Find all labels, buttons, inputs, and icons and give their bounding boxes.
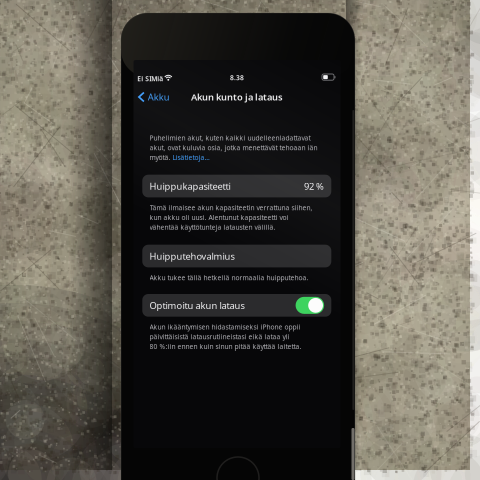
staticText: Lisätietoja…	[172, 153, 209, 162]
staticText: päivittäisistä latausrutiineistasi eikä …	[149, 332, 289, 341]
staticText: 92 %	[304, 180, 324, 192]
button[interactable]: Optimoitu akun lataus	[296, 297, 324, 314]
button[interactable]: Akku	[133, 89, 176, 105]
staticText: 8.38	[230, 73, 244, 82]
staticText: Akun ikääntymisen hidastamiseksi iPhone …	[149, 323, 300, 331]
staticText: akut, ovat kuluvia osia, jotka menettävä…	[149, 143, 317, 152]
staticText: vähentää käyttötunteja latausten välillä…	[149, 223, 275, 232]
staticText: myötä.	[149, 153, 172, 162]
staticText: Tämä ilmaisee akun kapasiteetin verrattu…	[149, 203, 312, 212]
staticText: Akku tukee tällä hetkellä normaalia huip…	[149, 273, 308, 282]
button[interactable]: Huipputehovalmius	[142, 245, 331, 267]
staticText: Huipputehovalmius	[149, 250, 234, 262]
staticText: Ei SIMiä	[137, 74, 163, 83]
staticText: Akun kunto ja lataus	[191, 91, 283, 103]
staticText: Akku	[148, 91, 170, 103]
staticText: Puhelimien akut, kuten kaikki uudelleenl…	[149, 133, 310, 142]
button[interactable]: Optimoitu akun lataus	[142, 294, 331, 317]
staticText: Optimoitu akun lataus	[149, 299, 244, 312]
button[interactable]: Lisätietoja…	[172, 153, 209, 162]
staticText: kun akku oli uusi. Alentunut kapasiteett…	[149, 213, 288, 222]
staticText: Huippukapasiteetti	[149, 180, 230, 192]
button[interactable]: Huippukapasiteetti	[142, 175, 331, 197]
staticText: 80 %:iin ennen kuin sinun pitää käyttää …	[149, 342, 301, 351]
